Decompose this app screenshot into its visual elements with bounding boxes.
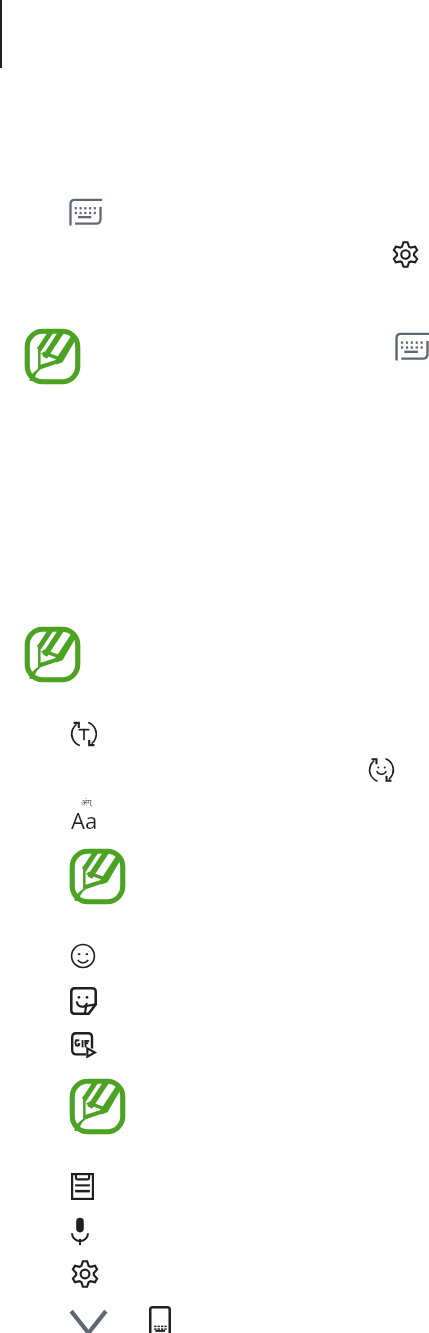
button[interactable]: Voice input [70, 1217, 90, 1245]
button[interactable]: Convert handwriting to text [70, 720, 98, 748]
button[interactable]: Emoji [70, 943, 96, 969]
button[interactable]: Collapse [69, 1306, 108, 1333]
button[interactable]: Samsung Notes [24, 328, 81, 385]
button[interactable]: Language [71, 796, 101, 828]
button[interactable]: Clipboard [71, 1173, 94, 1200]
button[interactable]: Settings [71, 1259, 99, 1289]
button[interactable]: GIF [71, 1032, 96, 1058]
button[interactable]: Convert to emoji [368, 756, 395, 784]
button[interactable]: Keyboard [149, 1306, 171, 1333]
button[interactable]: Settings [392, 240, 419, 269]
button[interactable]: Samsung Notes [24, 626, 81, 683]
button[interactable]: Keyboard [69, 199, 102, 226]
button[interactable]: Sticker [70, 987, 97, 1015]
button[interactable]: Samsung Notes [69, 848, 126, 905]
staticText: Aa [71, 805, 98, 835]
staticText: अंग् [81, 796, 92, 807]
button[interactable]: Keyboard [395, 333, 429, 361]
button[interactable]: Samsung Notes [69, 1078, 126, 1135]
